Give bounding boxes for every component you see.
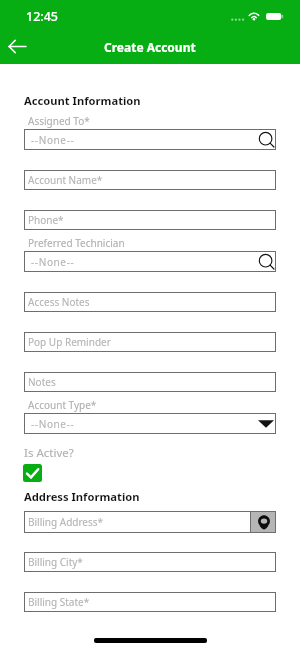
button[interactable]: Pick location on map	[251, 511, 276, 533]
button[interactable]: Pop Up Reminder	[24, 332, 276, 352]
button[interactable]: Billing City*	[24, 552, 276, 572]
staticText: 12:45	[26, 8, 59, 25]
staticText: Access Notes	[28, 295, 90, 309]
button[interactable]: Notes	[24, 372, 276, 392]
button[interactable]: Phone*	[24, 210, 276, 230]
staticText: Pop Up Reminder	[28, 335, 111, 349]
button[interactable]: Access Notes	[24, 292, 276, 312]
staticText: Billing Address*	[28, 515, 104, 529]
staticText: --None--	[31, 255, 75, 269]
staticText: Account Name*	[28, 173, 103, 187]
staticText: --None--	[31, 133, 75, 147]
button[interactable]: Billing State*	[24, 592, 276, 612]
staticText: Billing State*	[28, 595, 90, 609]
button[interactable]: Is Active checkbox	[23, 464, 42, 482]
staticText: Create Account	[104, 39, 196, 55]
staticText: Preferred Technician	[28, 236, 125, 250]
staticText: --None--	[31, 417, 75, 431]
staticText: Billing City*	[28, 555, 83, 569]
button[interactable]: --None--	[24, 129, 276, 150]
staticText: Account Type*	[28, 398, 97, 412]
button[interactable]: --None--	[24, 251, 276, 272]
staticText: Is Active?	[24, 445, 74, 461]
button[interactable]: Billing Address*	[24, 511, 276, 533]
button[interactable]: --None--	[24, 413, 276, 434]
staticText: Assigned To*	[28, 114, 90, 128]
button[interactable]: Account Name*	[24, 170, 276, 190]
staticText: Phone*	[28, 213, 64, 227]
staticText: Notes	[28, 375, 56, 389]
staticText: Address Information	[24, 489, 140, 504]
button[interactable]: Back	[0, 30, 36, 64]
staticText: Account Information	[24, 93, 141, 108]
